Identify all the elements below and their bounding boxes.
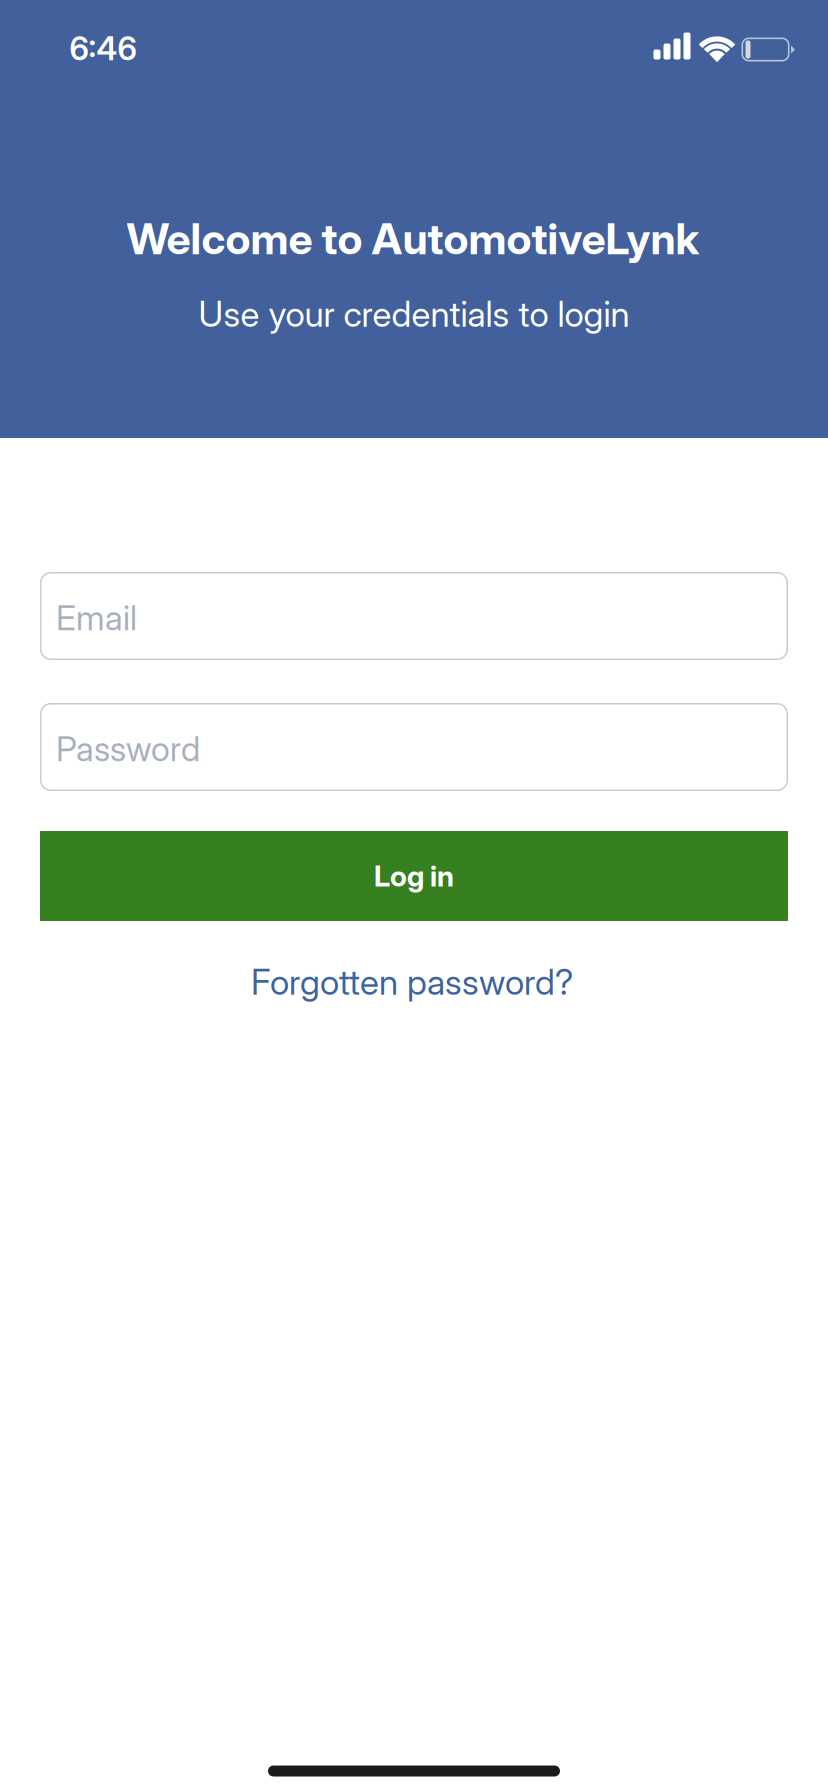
staticText: Email — [56, 597, 137, 638]
staticText: Use your credentials to login — [198, 293, 629, 335]
staticText: Log in — [374, 858, 454, 894]
button[interactable]: Forgotten password? — [251, 961, 573, 1003]
staticText: Forgotten password? — [251, 961, 573, 1003]
button[interactable]: Log in — [40, 831, 788, 921]
staticText: 6:46 — [69, 29, 136, 68]
button[interactable]: Email — [40, 572, 788, 660]
staticText: Password — [56, 728, 200, 769]
button[interactable]: Password — [40, 703, 788, 791]
staticText: Welcome to AutomotiveLynk — [126, 212, 699, 264]
